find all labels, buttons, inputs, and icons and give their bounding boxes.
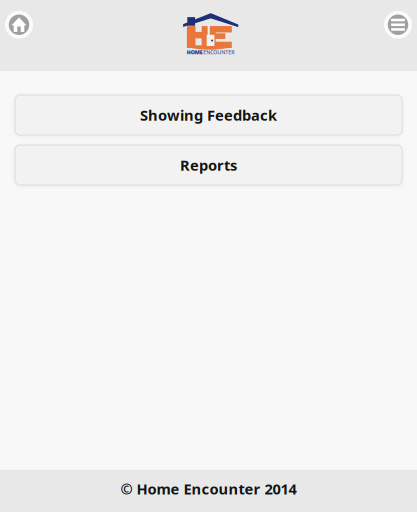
staticText: Reports: [180, 155, 237, 175]
button[interactable]: Home: [4, 10, 34, 40]
staticText: Showing Feedback: [140, 105, 277, 125]
button[interactable]: Reports: [15, 145, 402, 185]
staticText: HOME: [187, 49, 203, 56]
staticText: ENCOUNTER: [203, 49, 234, 56]
button[interactable]: Showing Feedback: [15, 95, 402, 135]
staticText: © Home Encounter 2014: [120, 479, 296, 498]
button[interactable]: Menu: [383, 10, 413, 40]
